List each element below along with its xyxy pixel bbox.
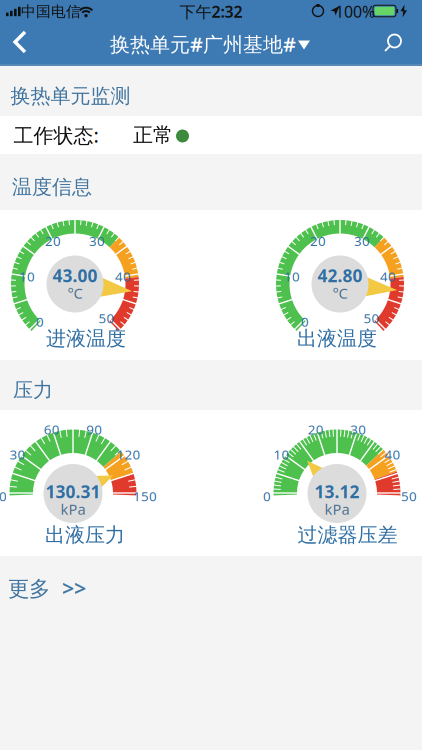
staticText: 10: [284, 268, 300, 285]
staticText: 42.80: [317, 264, 362, 287]
staticText: 压力: [13, 378, 53, 402]
staticText: 进液温度: [46, 326, 126, 351]
staticText: 换热单元监测: [10, 84, 130, 108]
staticText: 0: [0, 487, 7, 505]
staticText: 13.12: [314, 480, 359, 503]
staticText: °C: [67, 283, 82, 303]
staticText: kPa: [324, 499, 349, 519]
staticText: 0: [36, 313, 44, 330]
staticText: 0: [301, 313, 309, 330]
staticText: 中国电信: [21, 2, 81, 20]
staticText: 90: [86, 420, 102, 438]
staticText: 工作状态:: [13, 122, 98, 148]
staticText: 20: [310, 232, 326, 250]
staticText: °C: [332, 283, 347, 303]
staticText: 130.31: [45, 480, 100, 503]
staticText: 0: [263, 487, 271, 505]
staticText: 更多 >>: [8, 574, 86, 602]
staticText: 40: [384, 445, 400, 463]
staticText: kPa: [60, 499, 85, 519]
staticText: 10: [19, 268, 35, 285]
button[interactable]: 换热单元#广州基地#: [86, 22, 336, 66]
button[interactable]: 更多 >>: [8, 574, 86, 602]
staticText: 30: [89, 232, 105, 250]
staticText: 120: [116, 445, 140, 463]
staticText: 50: [401, 487, 417, 505]
staticText: 50: [363, 309, 379, 327]
staticText: 温度信息: [12, 175, 92, 199]
staticText: 40: [115, 268, 131, 285]
button[interactable]: [371, 21, 415, 65]
staticText: 150: [133, 487, 157, 505]
staticText: 100%: [335, 1, 375, 22]
staticText: 20: [308, 420, 324, 438]
button[interactable]: [0, 21, 44, 65]
staticText: 下午2:32: [179, 1, 242, 22]
staticText: 出液压力: [45, 523, 125, 547]
staticText: 30: [10, 445, 26, 463]
staticText: 40: [380, 268, 396, 285]
staticText: 30: [350, 420, 366, 438]
staticText: 20: [45, 232, 61, 250]
staticText: 正常: [133, 123, 173, 147]
staticText: 换热单元#广州基地#: [110, 31, 296, 57]
staticText: 43.00: [52, 264, 97, 287]
staticText: 50: [98, 309, 114, 327]
staticText: 30: [354, 232, 370, 250]
staticText: 出液温度: [297, 326, 377, 351]
staticText: 60: [44, 420, 60, 438]
staticText: 10: [274, 445, 290, 463]
staticText: 过滤器压差: [297, 523, 397, 547]
